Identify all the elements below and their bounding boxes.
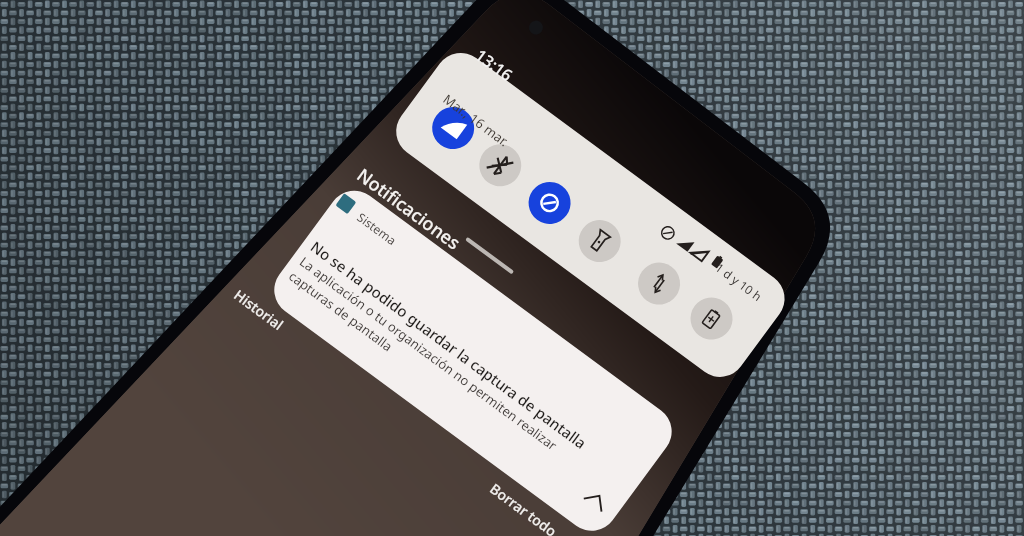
staticText: Historial	[230, 285, 288, 334]
button[interactable]: Borrar todo	[486, 479, 560, 536]
staticText: Borrar todo	[486, 479, 560, 536]
staticText: capturas de pantalla	[285, 267, 397, 356]
button[interactable]: Notificaciones	[352, 163, 466, 256]
button[interactable]: No se ha podido guardar la captura de pa…	[282, 236, 608, 500]
staticText: Sistema	[354, 209, 400, 248]
staticText: Mar., 16 mar.	[440, 90, 513, 151]
staticText: Notificaciones	[352, 163, 466, 256]
staticText: La aplicación o tu organización no permi…	[296, 252, 561, 454]
staticText: No se ha podido guardar la captura de pa…	[307, 236, 591, 453]
staticText: 1 d y 10 h	[712, 259, 765, 304]
button[interactable]: Historial	[230, 285, 288, 334]
staticText: 13:16	[471, 44, 517, 86]
